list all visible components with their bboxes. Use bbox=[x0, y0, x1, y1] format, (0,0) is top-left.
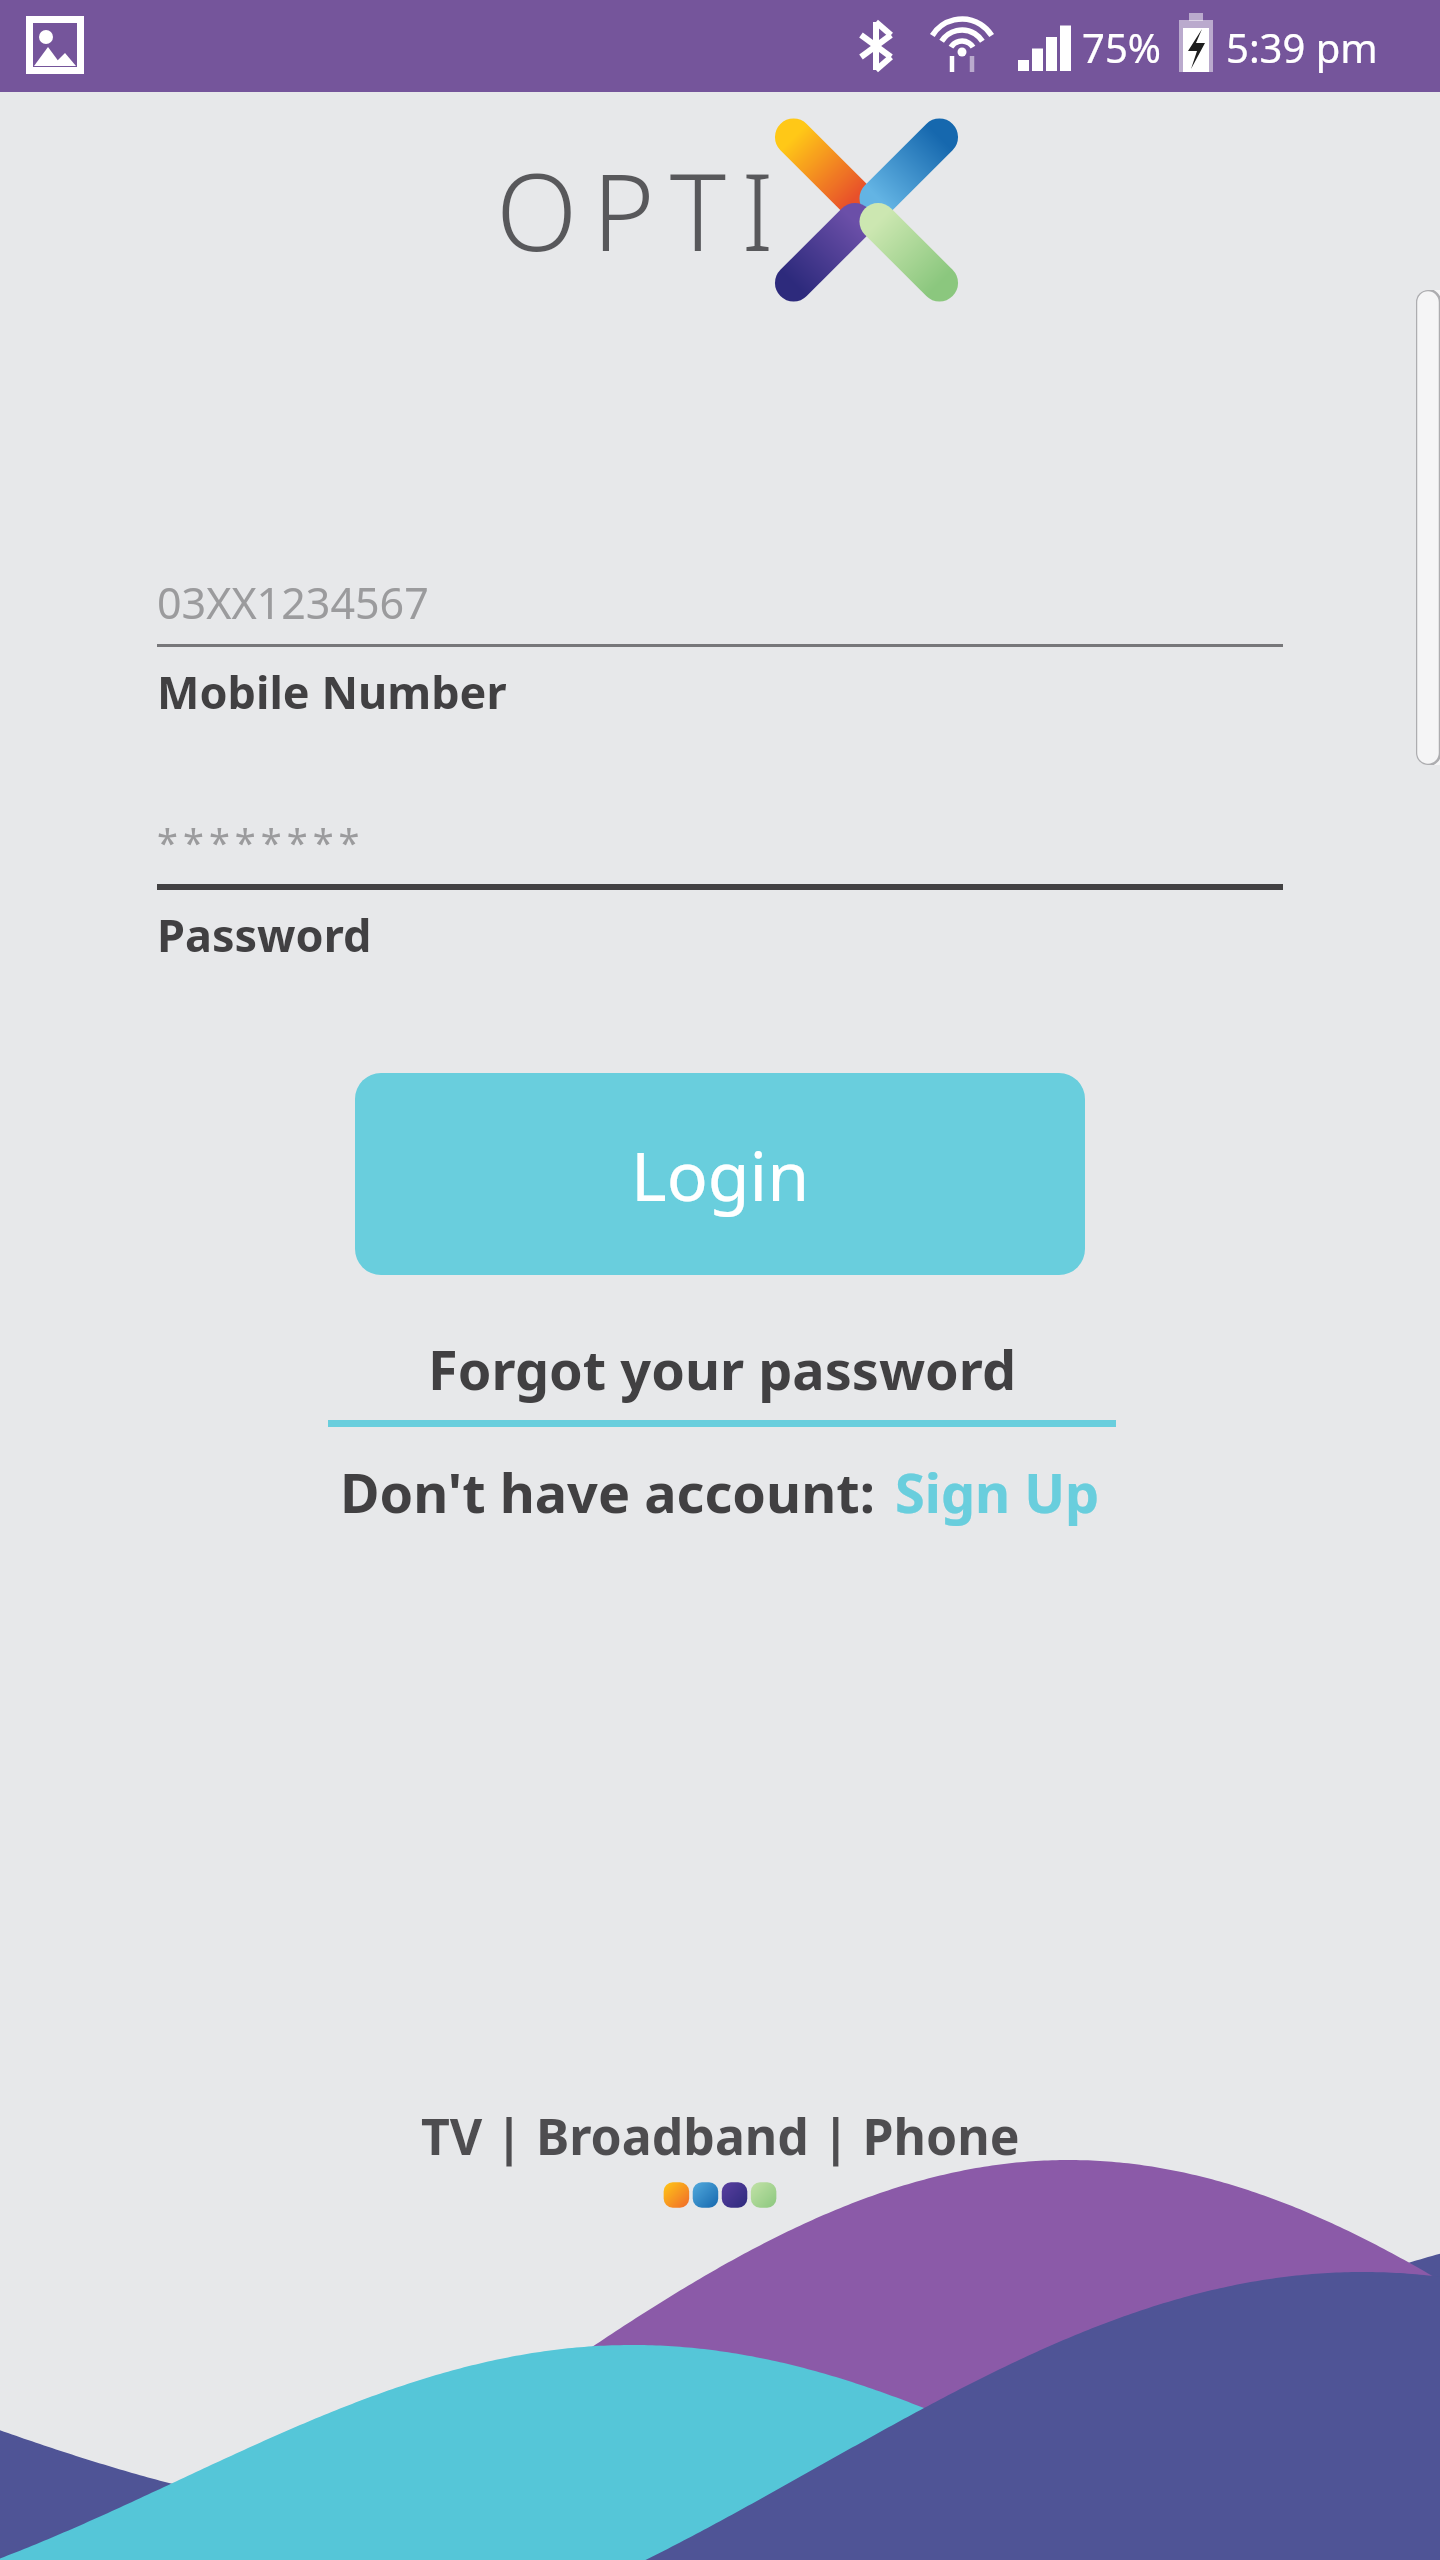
staticText: Mobile Number bbox=[157, 661, 507, 722]
staticText: Login bbox=[631, 1128, 810, 1221]
staticText: 5:39 pm bbox=[1226, 20, 1378, 74]
staticText: 03XX1234567 bbox=[157, 573, 429, 632]
button[interactable]: Sign Up bbox=[895, 1455, 1100, 1529]
button[interactable]: 03XX1234567 bbox=[157, 560, 1283, 722]
staticText: Don't have account: bbox=[340, 1455, 875, 1529]
button[interactable]: Login bbox=[355, 1073, 1085, 1275]
staticText: 75% bbox=[1082, 20, 1161, 74]
button[interactable]: ******** bbox=[157, 800, 1283, 965]
staticText: OPTI bbox=[496, 138, 789, 282]
button[interactable]: Forgot your password bbox=[328, 1332, 1116, 1427]
staticText: ******** bbox=[157, 816, 365, 868]
staticText: TV | Broadband | Phone bbox=[421, 2102, 1020, 2170]
staticText: Password bbox=[157, 904, 372, 965]
staticText: Sign Up bbox=[895, 1455, 1100, 1529]
staticText: Forgot your password bbox=[428, 1332, 1017, 1406]
